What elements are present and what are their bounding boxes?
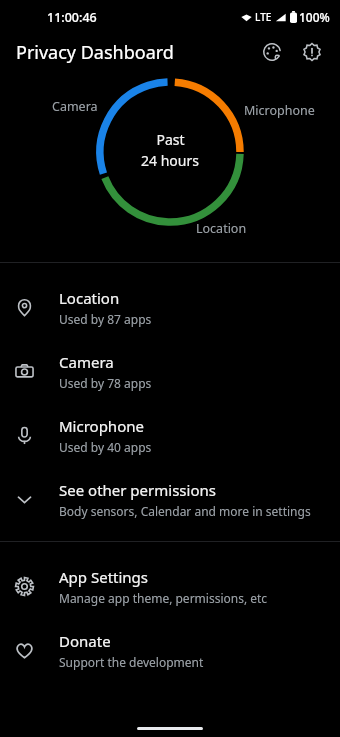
staticText: 11:00:46: [47, 9, 97, 26]
button[interactable]: Donate: [0, 618, 340, 682]
staticText: Location: [196, 220, 247, 237]
staticText: 24 hours: [141, 151, 199, 170]
staticText: Support the development: [59, 654, 204, 670]
staticText: App Settings: [59, 567, 149, 587]
button[interactable]: Theme: [252, 34, 292, 70]
staticText: Microphone: [244, 102, 315, 119]
staticText: Microphone: [59, 416, 144, 436]
staticText: Used by 78 apps: [59, 375, 152, 391]
staticText: Camera: [52, 98, 98, 115]
staticText: Body sensors, Calendar and more in setti…: [59, 503, 311, 519]
staticText: See other permissions: [59, 480, 216, 500]
staticText: Manage app theme, permissions, etc: [59, 590, 268, 606]
button[interactable]: App Settings: [0, 554, 340, 618]
staticText: Used by 87 apps: [59, 311, 152, 327]
button[interactable]: Location: [0, 275, 340, 339]
staticText: 100%: [299, 9, 330, 25]
button[interactable]: Camera: [0, 339, 340, 403]
staticText: Camera: [59, 352, 114, 372]
staticText: Used by 40 apps: [59, 439, 152, 455]
staticText: Past: [156, 130, 185, 149]
button[interactable]: Microphone: [0, 403, 340, 467]
button[interactable]: Settings: [292, 34, 332, 70]
staticText: Donate: [59, 631, 111, 651]
button[interactable]: See other permissions: [0, 467, 340, 531]
staticText: LTE: [255, 10, 272, 24]
staticText: Privacy Dashboard: [16, 40, 174, 65]
staticText: Location: [59, 288, 120, 308]
